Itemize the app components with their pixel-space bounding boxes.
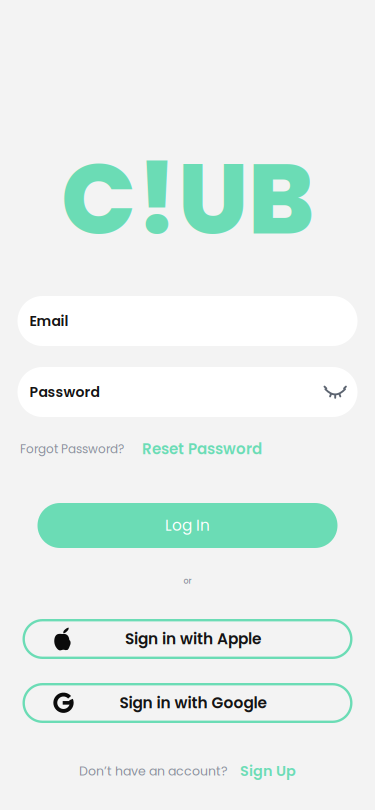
staticText: Forgot Password?	[20, 441, 124, 457]
staticText: or	[183, 575, 191, 587]
staticText: Email	[29, 311, 68, 331]
staticText: Sign in with Apple	[125, 628, 261, 650]
staticText: Don’t have an account?	[79, 762, 228, 780]
staticText: C!UB	[61, 130, 314, 268]
button[interactable]: Log In	[37, 503, 337, 548]
button[interactable]: Show password	[313, 370, 357, 414]
button[interactable]: Sign in with Google	[22, 683, 352, 723]
staticText: Sign Up	[240, 761, 296, 781]
staticText: Reset Password	[142, 438, 262, 460]
button[interactable]: Sign in with Apple	[22, 619, 352, 659]
staticText: Password	[29, 382, 99, 402]
staticText: Log In	[165, 515, 210, 536]
button[interactable]: Reset Password	[142, 438, 262, 460]
staticText: Sign in with Google	[119, 692, 266, 714]
button[interactable]: Sign Up	[240, 761, 296, 781]
